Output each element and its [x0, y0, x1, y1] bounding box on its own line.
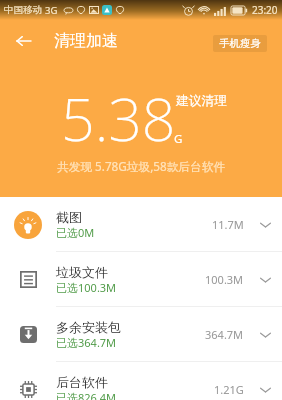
- staticText: 已选364.7M: [56, 335, 117, 350]
- staticText: 后台软件: [56, 374, 108, 390]
- staticText: 364.7M: [205, 327, 244, 342]
- staticText: 11.7M: [212, 217, 244, 232]
- staticText: 1.21G: [214, 382, 244, 397]
- button[interactable]: 垃圾文件: [0, 252, 282, 307]
- staticText: 清理加速: [54, 31, 118, 51]
- staticText: 多余安装包: [56, 319, 121, 335]
- staticText: 已选100.3M: [56, 280, 117, 295]
- staticText: 23:20: [252, 3, 278, 17]
- button[interactable]: 后台软件: [0, 362, 282, 400]
- button[interactable]: 多余安装包: [0, 307, 282, 362]
- staticText: 已选0M: [56, 225, 95, 240]
- staticText: 建议清理: [176, 93, 228, 109]
- staticText: 已选826.4M: [56, 390, 117, 400]
- staticText: G: [174, 131, 183, 147]
- staticText: 3G: [45, 4, 58, 17]
- staticText: 共发现 5.78G垃圾,58款后台软件: [57, 158, 226, 174]
- button[interactable]: 截图: [0, 197, 282, 252]
- staticText: 100.3M: [205, 272, 244, 287]
- staticText: 手机瘦身: [219, 37, 261, 50]
- staticText: 中国移动: [4, 4, 42, 16]
- button[interactable]: Back: [6, 24, 40, 58]
- button[interactable]: 手机瘦身: [213, 35, 267, 52]
- staticText: 截图: [56, 209, 82, 225]
- staticText: 5.38: [61, 78, 176, 158]
- staticText: 垃圾文件: [56, 264, 108, 280]
